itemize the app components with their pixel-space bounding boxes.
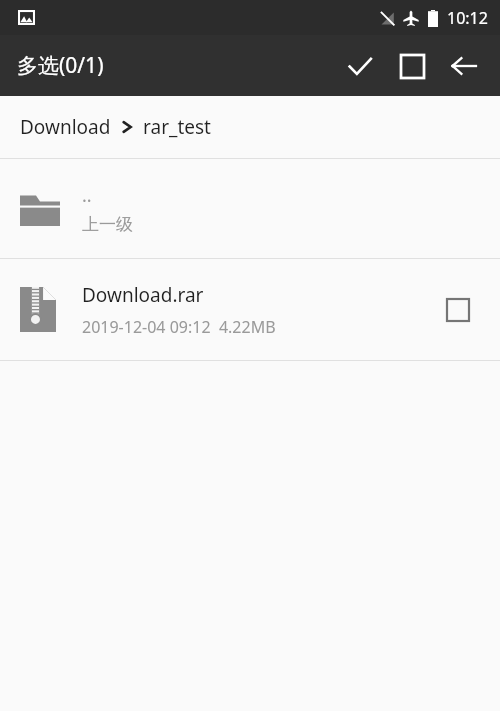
staticText: Download	[20, 114, 111, 140]
button[interactable]: Back	[438, 40, 490, 92]
button[interactable]: ..	[0, 159, 500, 258]
button[interactable]: Select all	[386, 40, 438, 92]
staticText: 多选(0/1)	[17, 51, 104, 80]
staticText: Download.rar	[82, 282, 204, 308]
staticText: ..	[82, 183, 92, 208]
button[interactable]: Select Download.rar	[436, 288, 480, 332]
button[interactable]: Download	[0, 96, 500, 158]
button[interactable]: Download.rar	[0, 259, 500, 360]
staticText: 上一级	[82, 214, 133, 235]
staticText: rar_test	[143, 114, 211, 140]
button[interactable]: Confirm selection	[334, 40, 386, 92]
staticText: 10:12	[447, 7, 488, 29]
staticText: 2019-12-04 09:12 4.22MB	[82, 316, 276, 338]
